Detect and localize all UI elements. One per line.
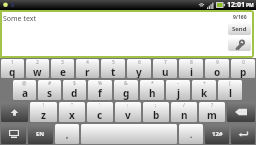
- button[interactable]: Send: [228, 23, 251, 35]
- staticText: &: [124, 80, 128, 87]
- staticText: y: [136, 65, 142, 78]
- staticText: 0: [242, 59, 245, 66]
- button[interactable]: @: [13, 80, 36, 100]
- button[interactable]: ": [59, 102, 85, 122]
- staticText: %: [98, 80, 103, 87]
- button[interactable]: EN: [28, 124, 53, 144]
- button[interactable]: 4: [76, 59, 99, 78]
- button[interactable]: $: [63, 80, 86, 100]
- button[interactable]: ;: [143, 102, 169, 122]
- staticText: v: [125, 108, 131, 122]
- button[interactable]: 2: [26, 59, 49, 78]
- staticText: i: [190, 65, 193, 78]
- staticText: ,: [66, 129, 69, 140]
- staticText: !: [43, 102, 45, 109]
- staticText: EN: [36, 130, 45, 138]
- staticText: h: [149, 86, 156, 100]
- staticText: d: [71, 86, 78, 100]
- staticText: c: [97, 108, 103, 122]
- staticText: t: [111, 65, 116, 78]
- staticText: p: [240, 65, 247, 78]
- staticText: l: [229, 86, 232, 100]
- staticText: 1: [11, 59, 14, 66]
- staticText: ": [71, 102, 74, 109]
- staticText: s: [47, 86, 53, 100]
- button[interactable]: [227, 102, 255, 122]
- button[interactable]: #: [38, 80, 61, 100]
- staticText: .: [190, 129, 193, 140]
- staticText: g: [123, 86, 130, 100]
- button[interactable]: [231, 124, 255, 144]
- button[interactable]: Attach: [228, 38, 251, 51]
- staticText: ': [99, 102, 101, 109]
- staticText: b: [153, 108, 160, 122]
- button[interactable]: [1, 102, 28, 122]
- staticText: 8: [190, 59, 193, 66]
- staticText: k: [201, 86, 208, 100]
- staticText: f: [98, 86, 102, 100]
- staticText: PM: [246, 2, 254, 9]
- staticText: 2: [36, 59, 39, 66]
- staticText: ?: [211, 102, 214, 109]
- staticText: 5: [112, 59, 115, 66]
- button[interactable]: 5: [101, 59, 125, 78]
- staticText: /: [183, 102, 185, 109]
- staticText: e: [60, 65, 66, 78]
- staticText: 6: [138, 59, 141, 66]
- button[interactable]: %: [88, 80, 112, 100]
- button[interactable]: -: [166, 80, 190, 100]
- staticText: 12:01: [227, 0, 245, 10]
- staticText: m: [207, 108, 217, 122]
- button[interactable]: ': [87, 102, 113, 122]
- button[interactable]: 9: [205, 59, 229, 78]
- staticText: 12#: [212, 130, 223, 138]
- button[interactable]: 12#: [205, 124, 229, 144]
- button[interactable]: &: [114, 80, 138, 100]
- staticText: *: [151, 80, 154, 87]
- button[interactable]: .: [179, 124, 203, 144]
- staticText: x: [69, 108, 75, 122]
- staticText: #: [48, 80, 52, 87]
- button[interactable]: !: [30, 102, 57, 122]
- button[interactable]: 1: [1, 59, 24, 78]
- staticText: 3: [61, 59, 64, 66]
- button[interactable]: /: [171, 102, 197, 122]
- staticText: 9: [216, 59, 219, 66]
- staticText: 7: [164, 59, 167, 66]
- staticText: w: [33, 65, 42, 78]
- staticText: q: [9, 65, 16, 78]
- staticText: 9/160: [233, 14, 247, 21]
- button[interactable]: +: [192, 80, 216, 100]
- button[interactable]: :: [115, 102, 141, 122]
- staticText: Send: [232, 25, 247, 33]
- button[interactable]: [81, 124, 177, 144]
- staticText: :: [127, 102, 129, 109]
- button[interactable]: 7: [153, 59, 177, 78]
- staticText: z: [41, 108, 46, 122]
- staticText: j: [177, 86, 180, 100]
- button[interactable]: [1, 124, 26, 144]
- button[interactable]: 8: [179, 59, 203, 78]
- button[interactable]: 3: [51, 59, 74, 78]
- staticText: u: [162, 65, 169, 78]
- button[interactable]: 6: [127, 59, 151, 78]
- button[interactable]: 0: [231, 59, 255, 78]
- staticText: a: [22, 86, 28, 100]
- staticText: 4: [86, 59, 89, 66]
- staticText: (: [229, 80, 231, 87]
- button[interactable]: (: [218, 80, 242, 100]
- staticText: ;: [155, 102, 157, 109]
- button[interactable]: ?: [199, 102, 225, 122]
- staticText: r: [85, 65, 90, 78]
- staticText: $: [73, 80, 76, 87]
- staticText: o: [214, 65, 221, 78]
- staticText: @: [22, 80, 27, 87]
- staticText: n: [181, 108, 188, 122]
- staticText: Some text: [3, 14, 36, 24]
- button[interactable]: ,: [55, 124, 79, 144]
- staticText: -: [177, 80, 179, 87]
- staticText: +: [203, 80, 206, 87]
- button[interactable]: *: [140, 80, 164, 100]
